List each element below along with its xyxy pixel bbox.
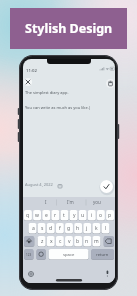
button[interactable] [106,79,115,88]
button[interactable]: a [29,223,37,234]
staticText: p [108,212,112,219]
button[interactable]: p [106,210,114,221]
button[interactable] [24,236,34,247]
button[interactable]: e [42,210,50,221]
staticText: a [32,225,35,232]
button[interactable]: return [91,249,114,260]
staticText: k [95,225,98,232]
staticText: g [67,225,71,232]
button[interactable]: space [49,249,89,260]
button[interactable] [37,249,46,260]
staticText: I [45,199,47,205]
button[interactable]: v [65,236,73,247]
staticText: return [96,252,109,258]
button[interactable] [24,78,32,86]
staticText: you [93,199,101,205]
staticText: Stylish Design [25,20,113,37]
staticText: f [59,225,61,232]
staticText: l [105,225,107,232]
button[interactable]: f [56,223,64,234]
button[interactable]: q [24,210,32,221]
button[interactable] [100,180,113,193]
button[interactable]: m [92,236,100,247]
button[interactable]: j [83,223,91,234]
button[interactable]: c [56,236,64,247]
staticText: j [86,225,88,232]
staticText: r [54,212,57,219]
button[interactable]: w [33,210,41,221]
button[interactable]: l [102,223,110,234]
staticText: q [26,212,30,219]
staticText: y [73,212,76,219]
staticText: space [63,252,75,258]
button[interactable]: n [83,236,91,247]
button[interactable]: t [60,210,68,221]
staticText: o [99,212,103,219]
staticText: e [45,212,48,219]
button[interactable] [104,236,114,247]
staticText: u [81,212,85,219]
staticText: m [94,238,99,245]
button[interactable]: x [47,236,55,247]
staticText: I'm [67,199,74,205]
staticText: v [68,238,71,245]
staticText: August 4, 2022 [25,182,53,187]
staticText: You can write as much as you like.| [25,105,91,110]
staticText: i [91,212,93,219]
button[interactable]: d [47,223,55,234]
staticText: w [35,212,39,219]
button[interactable]: s [38,223,46,234]
button[interactable]: 123 [24,249,33,260]
button[interactable]: k [92,223,100,234]
staticText: 11:02 [26,67,37,73]
staticText: z [41,238,44,245]
button[interactable]: r [51,210,59,221]
button[interactable]: g [65,223,73,234]
button[interactable] [28,269,35,279]
staticText: t [63,212,65,219]
staticText: x [50,238,53,245]
staticText: h [76,225,80,232]
button[interactable] [104,269,111,279]
button[interactable]: i [88,210,96,221]
staticText: n [85,238,89,245]
staticText: d [49,225,53,232]
button[interactable]: Stylish Design [10,8,127,49]
button[interactable]: u [79,210,87,221]
staticText: 123 [26,253,32,257]
button[interactable]: h [74,223,82,234]
staticText: s [41,225,44,232]
button[interactable]: y [70,210,78,221]
staticText: The simplest diary app. [25,90,69,95]
button[interactable]: b [74,236,82,247]
button[interactable]: z [38,236,46,247]
button[interactable]: o [97,210,105,221]
staticText: c [59,238,62,245]
staticText: b [76,238,80,245]
